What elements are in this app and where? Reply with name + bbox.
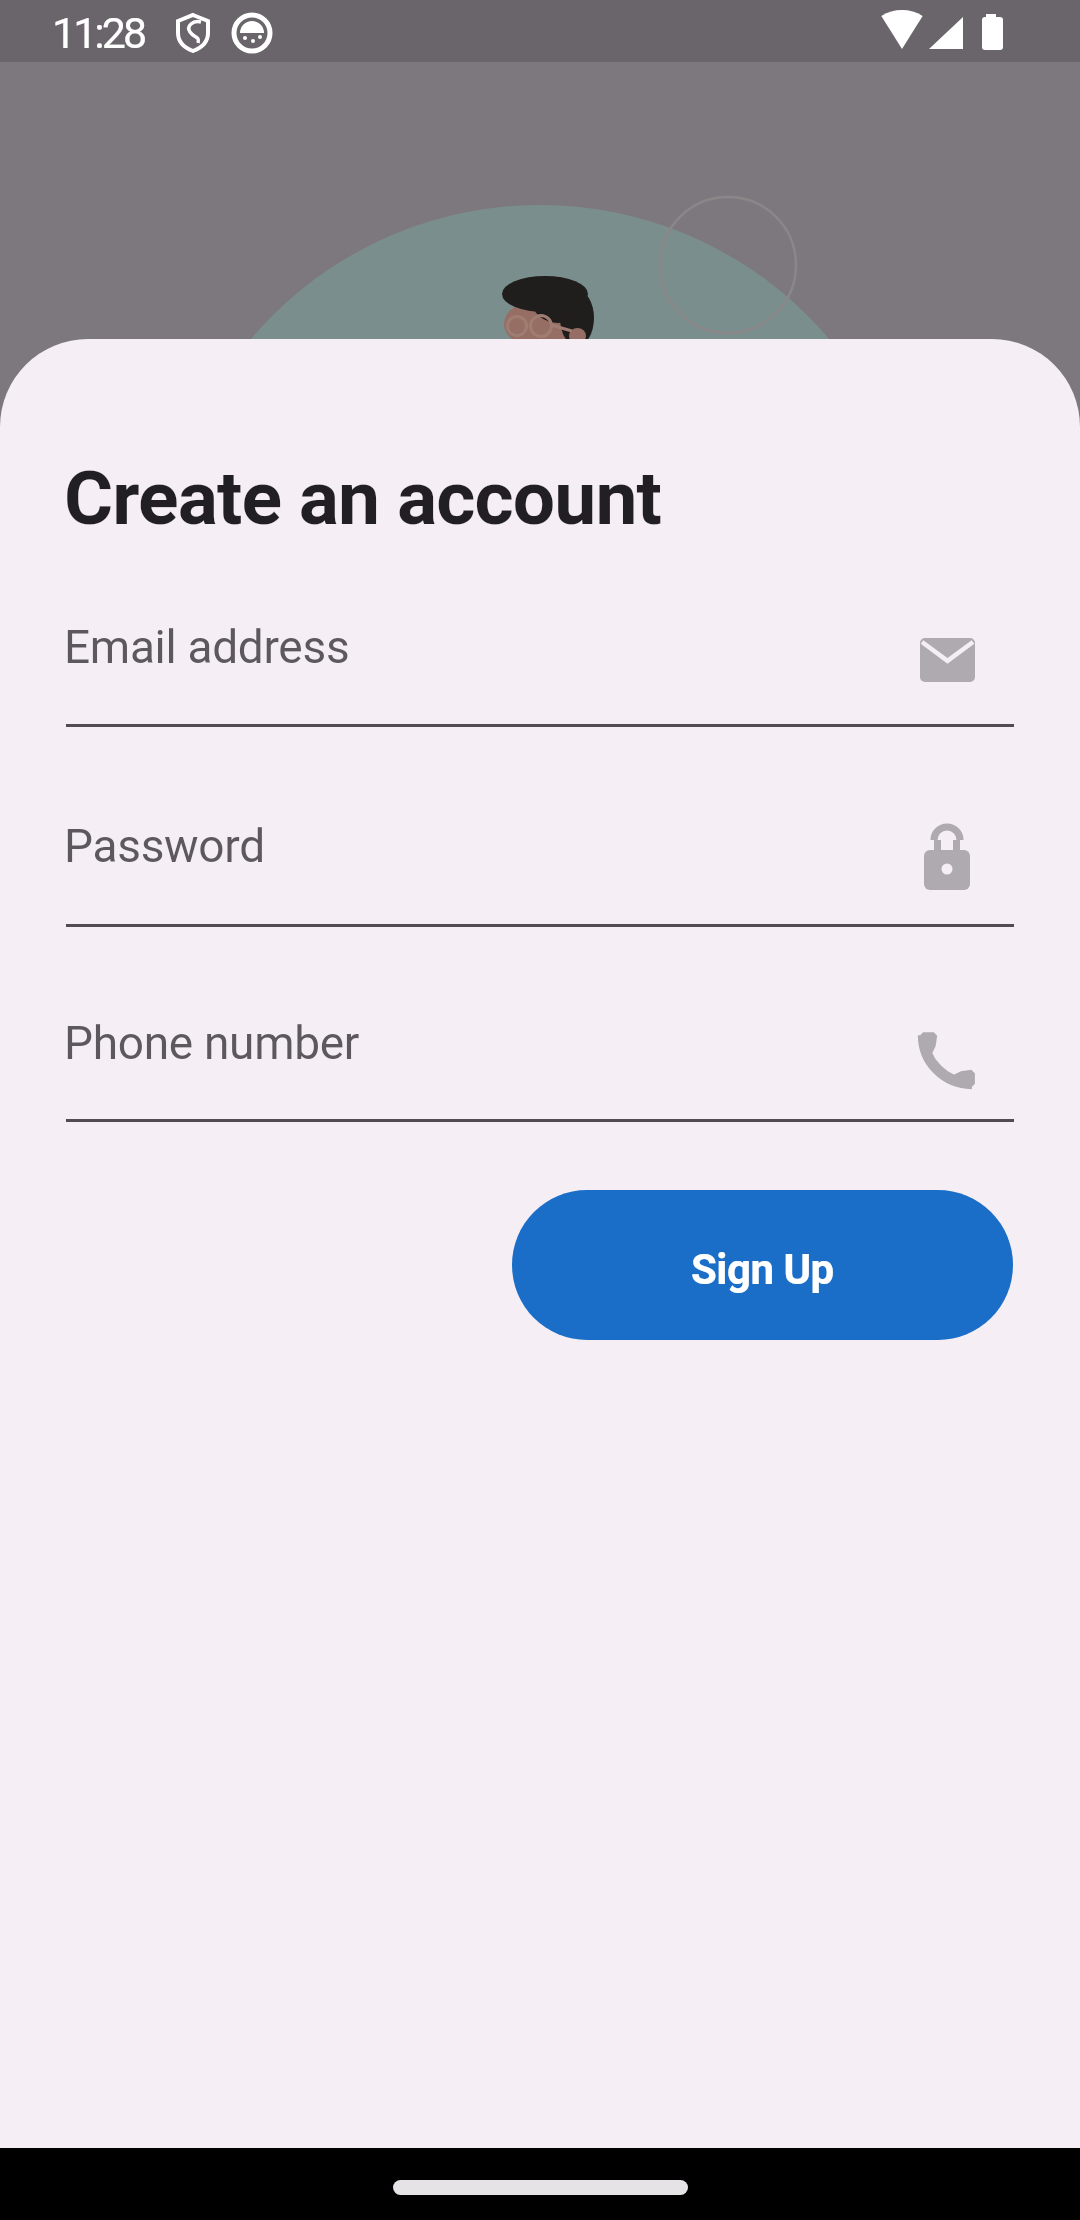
button[interactable]: Password bbox=[66, 795, 1014, 927]
staticText: Password bbox=[64, 819, 265, 873]
button[interactable]: Sign Up bbox=[512, 1190, 1013, 1340]
staticText: Create an account bbox=[64, 454, 661, 542]
staticText: Email address bbox=[64, 620, 350, 674]
staticText: Sign Up bbox=[691, 1245, 834, 1294]
staticText: 11:28 bbox=[52, 8, 145, 58]
button[interactable]: Phone number bbox=[66, 990, 1014, 1122]
button[interactable]: Email address bbox=[66, 595, 1014, 727]
staticText: Phone number bbox=[64, 1016, 360, 1070]
